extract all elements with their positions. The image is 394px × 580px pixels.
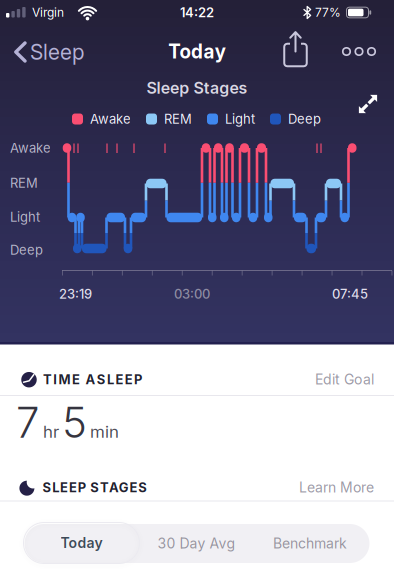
staticText: 7 (16, 398, 40, 447)
staticText: Sleep (30, 40, 84, 64)
staticText: Awake (90, 111, 131, 127)
staticText: REM (10, 175, 38, 191)
staticText: 23:19 (59, 286, 92, 302)
staticText: Deep (288, 111, 321, 127)
staticText: Sleep Stages (146, 79, 248, 97)
button[interactable]: Benchmark (255, 524, 365, 563)
staticText: Edit Goal (315, 371, 374, 388)
staticText: TIME ASLEEP (43, 372, 142, 387)
staticText: Today (60, 535, 102, 551)
staticText: Benchmark (273, 535, 347, 552)
staticText: 14:22 (180, 5, 214, 20)
staticText: Light (10, 209, 40, 225)
button[interactable]: Today (23, 522, 139, 563)
staticText: hr (43, 422, 59, 442)
staticText: 5 (62, 398, 87, 447)
button[interactable]: Edit Goal (274, 371, 374, 388)
button[interactable] (337, 36, 381, 66)
button[interactable]: 30 Day Avg (141, 524, 251, 563)
button[interactable] (355, 91, 380, 116)
staticText: 03:00 (174, 286, 210, 302)
staticText: Light (225, 111, 255, 127)
staticText: Today (168, 40, 226, 63)
button[interactable]: Sleep (10, 38, 100, 66)
staticText: 07:45 (332, 286, 368, 302)
staticText: 77% (315, 5, 341, 20)
staticText: SLEEP STAGES (42, 480, 147, 495)
staticText: Virgin (32, 5, 64, 20)
staticText: 30 Day Avg (157, 535, 235, 552)
staticText: Deep (10, 242, 43, 258)
staticText: Learn More (299, 479, 374, 496)
button[interactable]: Learn More (264, 479, 374, 496)
staticText: min (90, 422, 119, 442)
staticText: Awake (10, 140, 51, 156)
button[interactable] (276, 29, 314, 69)
staticText: REM (164, 111, 192, 127)
